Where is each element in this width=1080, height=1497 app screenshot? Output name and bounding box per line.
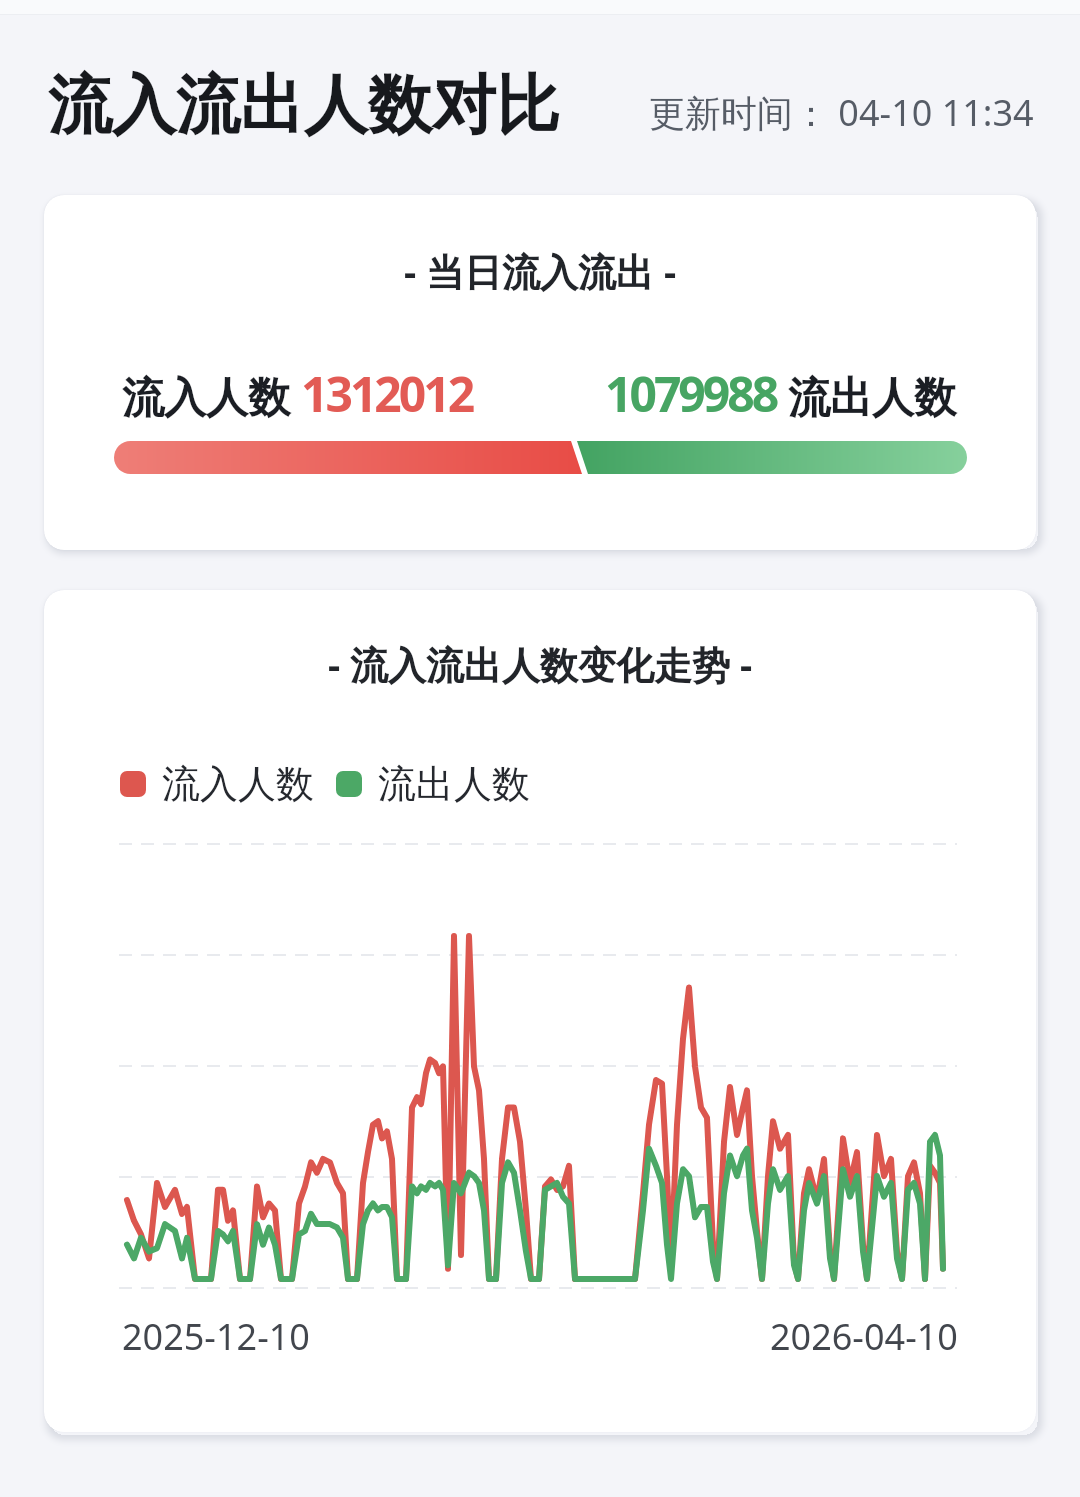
staticText: 1079988 [605,361,777,426]
staticText: 流出人数 [378,760,530,808]
staticText: 流入流出人数对比 [48,65,560,146]
staticText: 流出人数 [777,367,956,424]
staticText: 流入人数 [122,367,301,424]
button[interactable] [120,771,146,797]
button[interactable] [336,771,362,797]
staticText: 2026-04-10 [770,1312,958,1361]
button[interactable]: - 当日流入流出 - [44,195,1036,550]
staticText: 2025-12-10 [122,1312,310,1361]
button[interactable]: - 流入流出人数变化走势 - [44,590,1036,1432]
staticText: 更新时间： 04-10 11:34 [649,88,1034,137]
staticText: - 流入流出人数变化走势 - [328,638,753,690]
staticText: - 当日流入流出 - [404,245,677,297]
staticText: 1312012 [301,361,473,426]
staticText: 流入人数 [162,760,314,808]
